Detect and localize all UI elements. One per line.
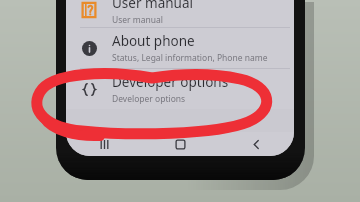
button[interactable]: Developer options [66, 69, 294, 109]
staticText: Developer options [112, 93, 186, 105]
staticText: Developer options [112, 73, 229, 91]
other: Developer options [81, 81, 98, 98]
staticText: User manual [112, 14, 163, 26]
button[interactable]: Back [218, 132, 294, 156]
button[interactable]: Recent apps [66, 132, 142, 156]
staticText: User manual [112, 0, 193, 12]
staticText: About phone [112, 32, 195, 50]
button[interactable]: User manual [66, 0, 294, 27]
button[interactable]: About phone [66, 28, 294, 68]
staticText: Status, Legal information, Phone name [112, 52, 268, 64]
other: About phone [82, 41, 97, 56]
other: User manual [81, 2, 97, 18]
button[interactable]: Home [142, 132, 218, 156]
